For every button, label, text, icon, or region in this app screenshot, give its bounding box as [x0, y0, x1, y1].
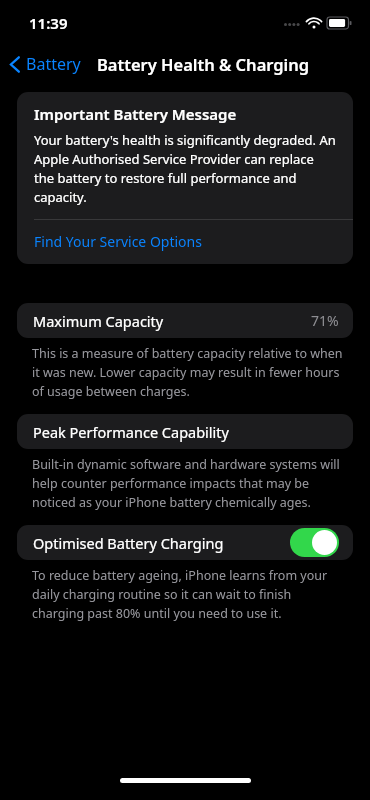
button[interactable]: Battery	[0, 49, 87, 79]
staticText: 11:39	[29, 13, 68, 33]
staticText: Optimised Battery Charging	[33, 533, 224, 553]
button[interactable]: Find Your Service Options	[17, 220, 353, 264]
button[interactable]: Peak Performance Capability	[17, 414, 353, 449]
staticText: Your battery's health is significantly d…	[34, 131, 336, 206]
button[interactable]: Optimised Battery Charging	[17, 525, 353, 560]
staticText: This is a measure of battery capacity re…	[32, 345, 344, 400]
staticText: Find Your Service Options	[34, 232, 202, 251]
staticText: Important Battery Message	[34, 104, 237, 124]
staticText: 71%	[311, 311, 339, 330]
staticText: Built-in dynamic software and hardware s…	[32, 456, 344, 511]
staticText: Battery Health & Charging	[97, 53, 310, 75]
staticText: Battery	[26, 53, 81, 75]
staticText: Peak Performance Capability	[33, 422, 229, 442]
staticText: Maximum Capacity	[33, 311, 164, 331]
staticText: To reduce battery ageing, iPhone learns …	[32, 567, 344, 622]
button[interactable]: Maximum Capacity	[17, 303, 353, 338]
button[interactable]: Optimised Battery Charging toggle	[290, 528, 339, 557]
